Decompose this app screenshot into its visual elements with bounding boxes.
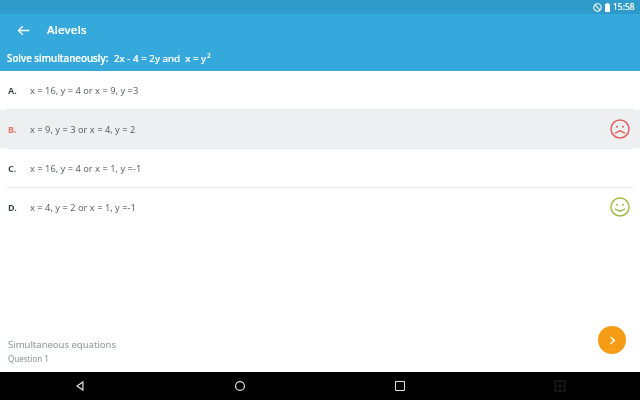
button[interactable]: Next question [598,326,626,354]
staticText: Simultaneous equations [8,338,116,351]
staticText: A. [8,84,17,96]
staticText: x = 4, y = 2 or x = 1, y =-1 [30,201,136,214]
staticText: Alevels [47,22,87,38]
staticText: x = 16, y = 4 or x = 1, y =-1 [30,162,142,175]
button[interactable]: C. [0,149,640,187]
staticText: 2x - 4 = 2y and x = y [114,52,207,65]
button[interactable]: D. [0,188,640,226]
staticText: Question 1 [8,353,49,364]
button[interactable]: Home [160,372,320,400]
staticText: 15:58 [613,1,635,13]
staticText: B. [8,123,17,135]
button[interactable]: Back [0,372,160,400]
staticText: D. [8,201,17,213]
button[interactable]: Back [12,19,34,41]
staticText: x = 16, y = 4 or x = 9, y =3 [30,84,139,97]
button[interactable]: A. [0,71,640,109]
staticText: C. [8,162,17,174]
button[interactable]: Recent apps [320,372,480,400]
staticText: Solve simultaneously: [7,52,109,65]
button[interactable]: B. [0,110,640,148]
staticText: x = 9, y = 3 or x = 4, y = 2 [30,123,136,136]
staticText: 2 [207,51,211,60]
